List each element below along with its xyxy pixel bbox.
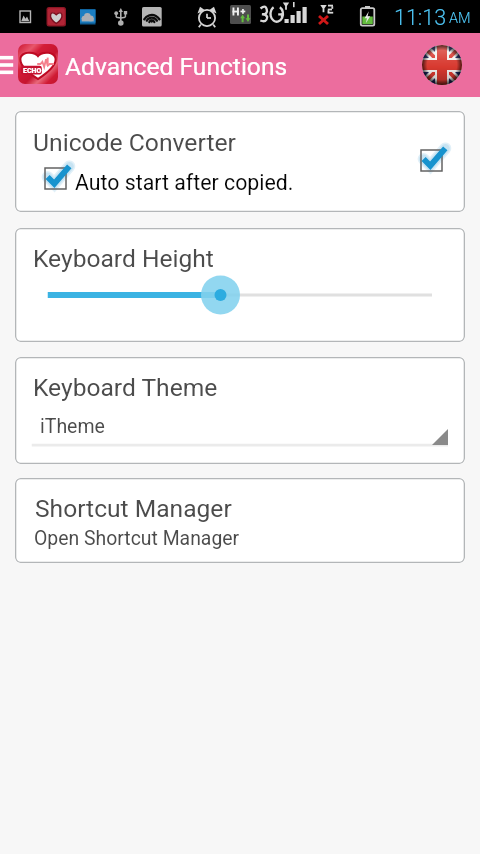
staticText: Unicode Converter — [33, 128, 236, 157]
staticText: Shortcut Manager — [35, 494, 232, 523]
staticText: Auto start after copied. — [75, 170, 294, 195]
staticText: Keyboard Theme — [33, 373, 218, 402]
button[interactable]: Open navigation menu — [0, 45, 16, 85]
button[interactable]: Shortcut Manager — [15, 478, 465, 563]
button[interactable]: Keyboard theme selector — [15, 357, 465, 464]
button[interactable]: Keyboard Theme — [15, 357, 465, 464]
button[interactable]: Keyboard height — [15, 228, 465, 342]
button[interactable]: App icon — [18, 44, 58, 84]
staticText: Keyboard Height — [33, 244, 214, 273]
button[interactable]: Keyboard Height — [15, 228, 465, 342]
staticText: iTheme — [40, 415, 105, 438]
button[interactable]: Change language — [422, 45, 462, 85]
staticText: Advanced Functions — [65, 52, 288, 81]
button[interactable]: Auto start after copied checkbox — [44, 168, 78, 194]
staticText: Open Shortcut Manager — [34, 527, 240, 550]
staticText: 11:13 — [394, 5, 447, 30]
staticText: ECHO — [23, 67, 42, 75]
staticText: AM — [449, 10, 471, 27]
button[interactable]: Unicode Converter — [15, 111, 465, 212]
button[interactable]: Enable unicode converter — [420, 150, 454, 176]
